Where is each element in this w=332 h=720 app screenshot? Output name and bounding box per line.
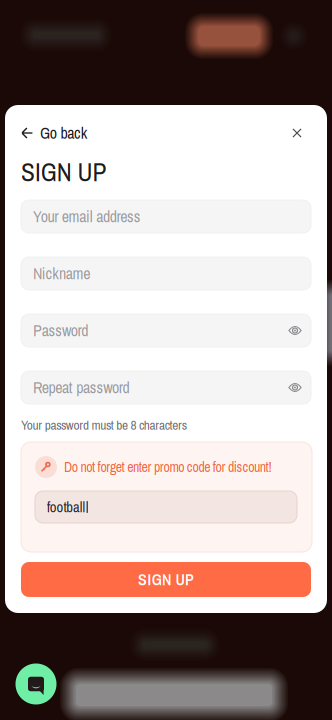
staticText: SIGN UP xyxy=(21,155,106,189)
button[interactable]: Show password xyxy=(280,316,310,344)
staticText: Your email address xyxy=(33,206,141,227)
button[interactable]: Open chat xyxy=(15,663,56,704)
staticText: Repeat password xyxy=(33,377,129,398)
staticText: Password xyxy=(33,320,88,341)
staticText: Go back xyxy=(40,122,88,144)
staticText: Your password must be 8 characters xyxy=(21,416,187,434)
button[interactable]: SIGN UP xyxy=(21,562,311,597)
staticText: Do not forget enter promo code for disco… xyxy=(64,458,271,476)
staticText: SIGN UP xyxy=(138,569,194,590)
button[interactable]: Show password xyxy=(280,373,310,401)
staticText: football xyxy=(47,497,86,517)
button[interactable]: Go back xyxy=(21,120,107,146)
staticText: Nickname xyxy=(33,263,90,284)
button[interactable]: Close xyxy=(284,121,310,145)
